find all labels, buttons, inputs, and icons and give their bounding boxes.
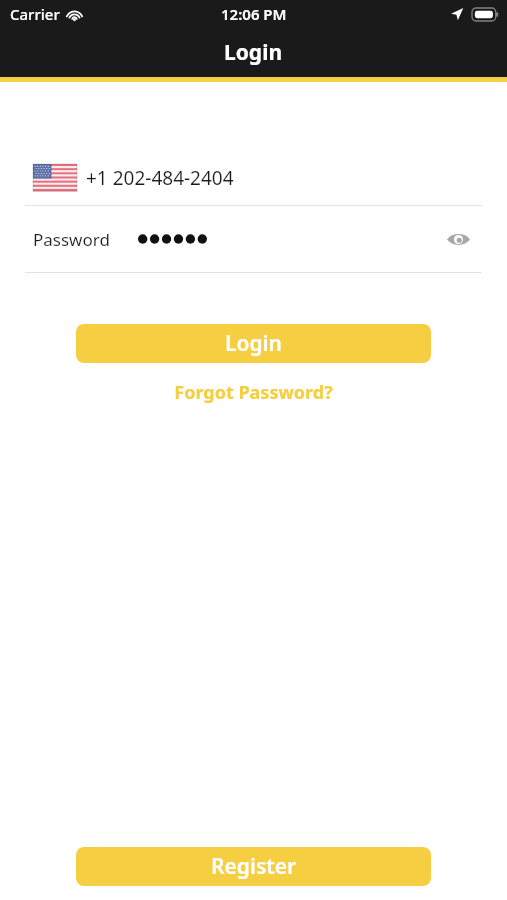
button[interactable]: +1 202-484-2404 bbox=[0, 150, 507, 205]
staticText: Register bbox=[211, 852, 297, 881]
button[interactable]: Register bbox=[76, 847, 431, 886]
button[interactable]: Password bbox=[0, 206, 507, 272]
staticText: +1 202-484-2404 bbox=[86, 165, 234, 191]
staticText: 12:06 PM bbox=[221, 4, 287, 24]
button[interactable]: Login bbox=[76, 324, 431, 363]
button[interactable]: Forgot Password? bbox=[0, 380, 507, 405]
staticText: Carrier bbox=[10, 4, 60, 24]
staticText: Forgot Password? bbox=[174, 380, 333, 405]
staticText: Password bbox=[33, 228, 110, 251]
staticText: Login bbox=[225, 329, 282, 358]
button[interactable]: Show password bbox=[442, 223, 474, 255]
staticText: Login bbox=[224, 38, 283, 67]
